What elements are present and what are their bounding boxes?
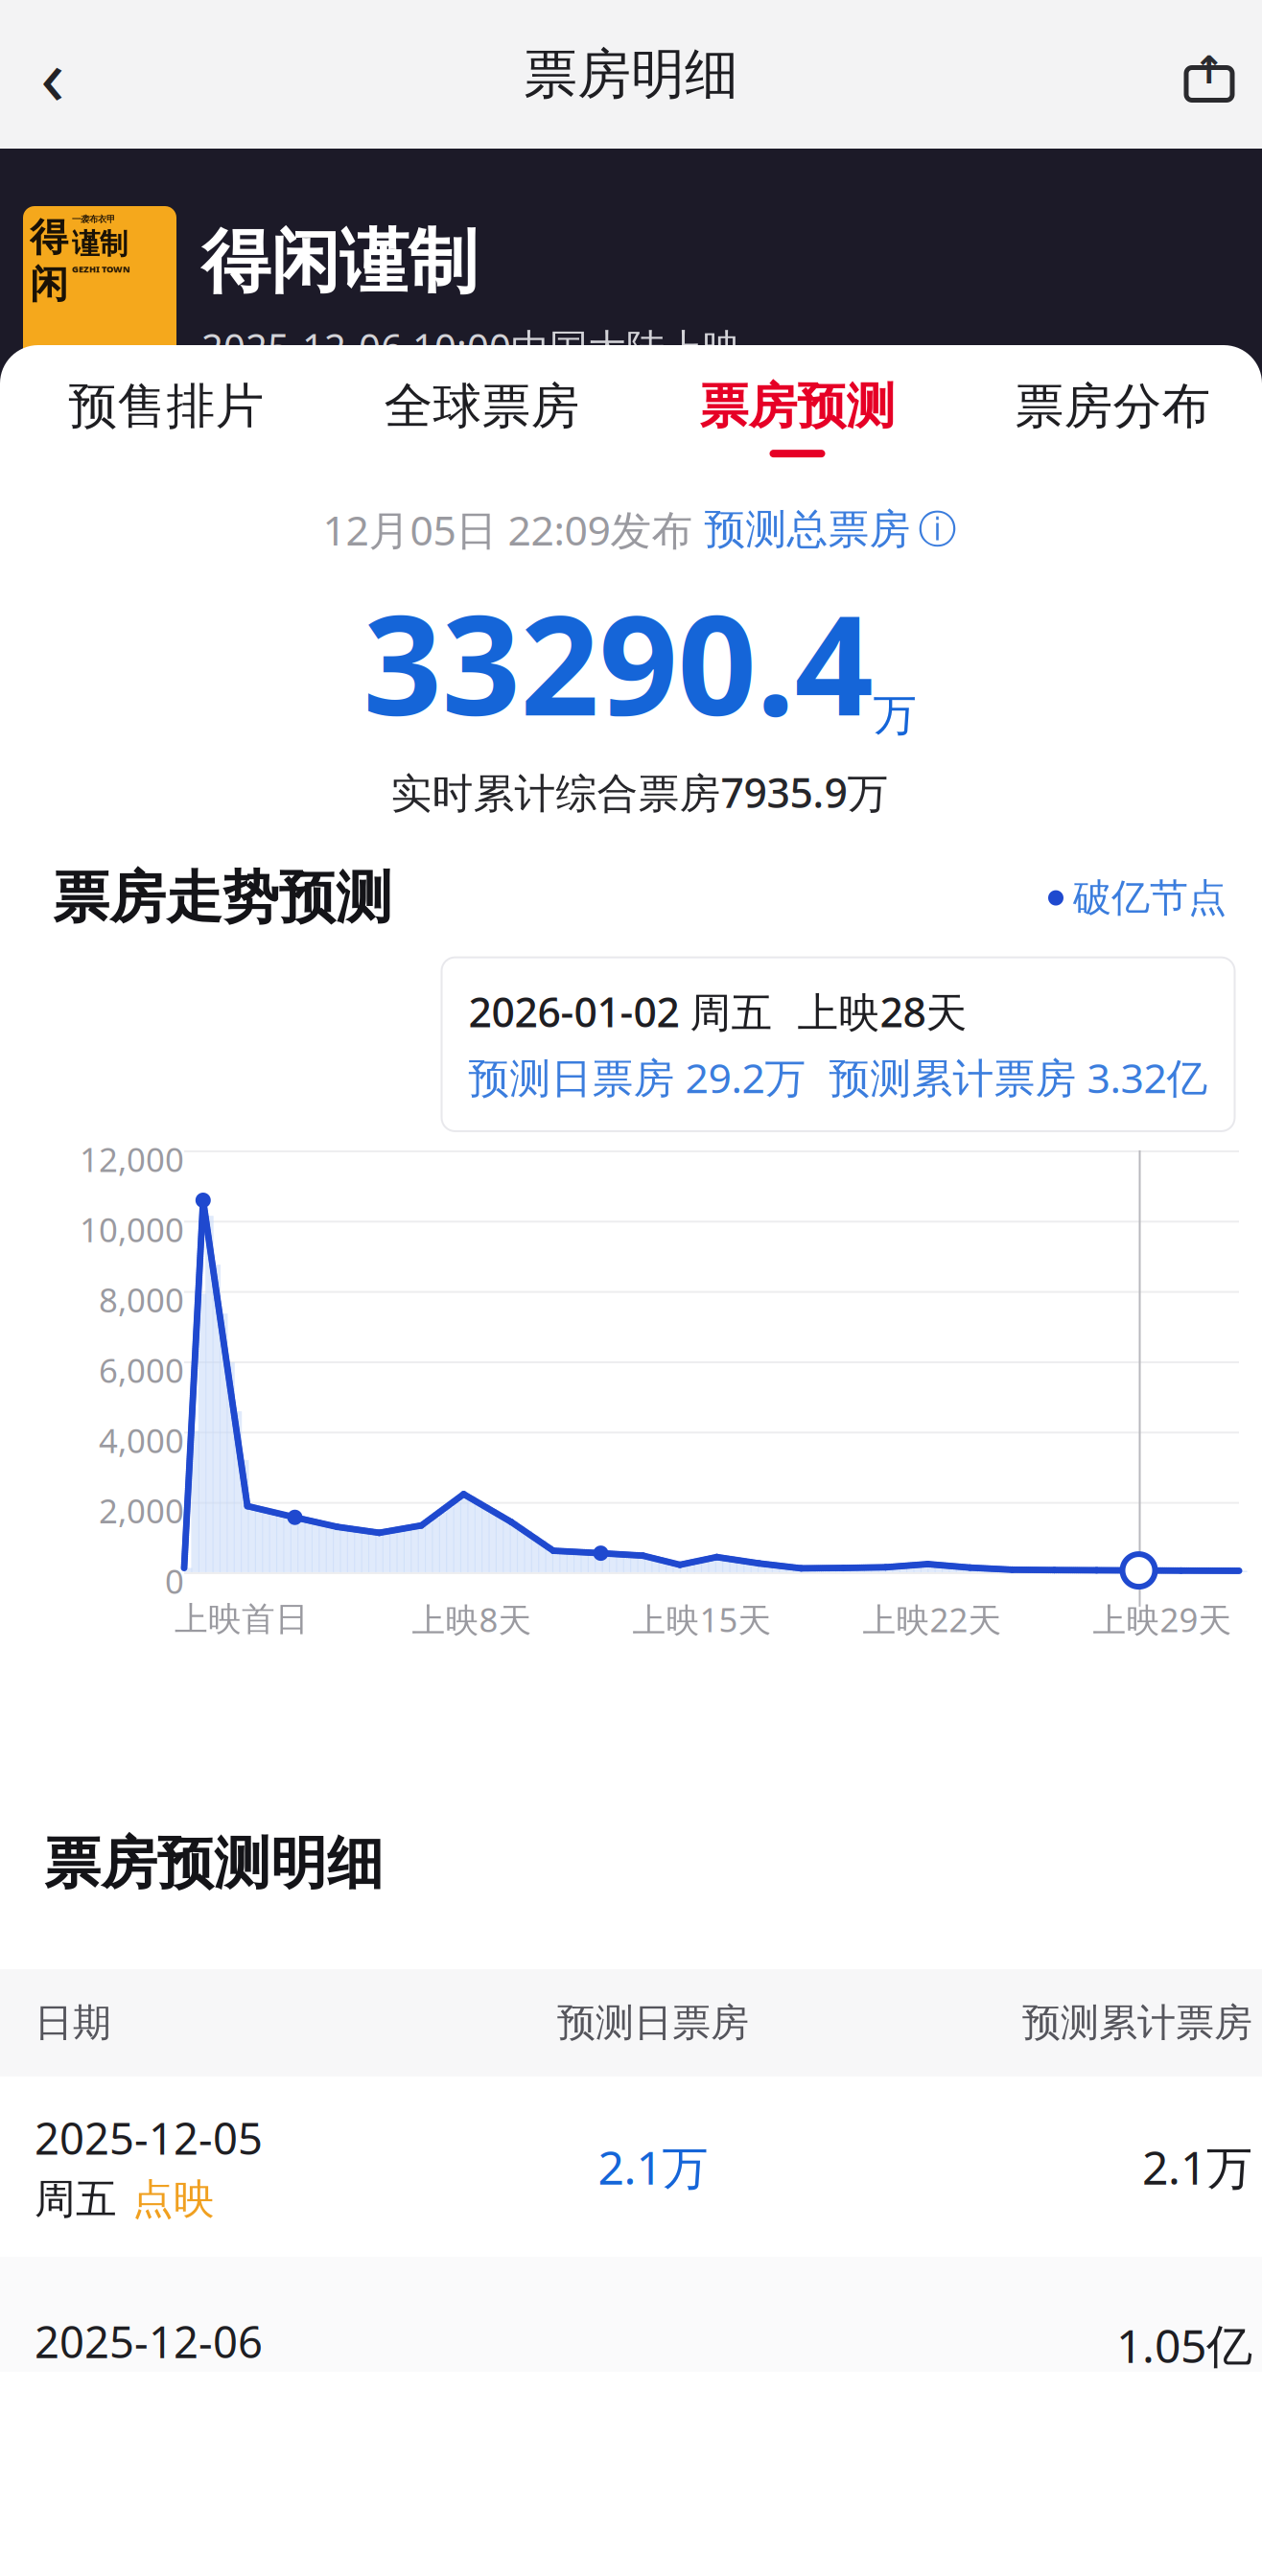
staticText: ↑: [1193, 48, 1226, 92]
staticText: 全球票房: [384, 377, 580, 436]
staticText: 预测日票房: [557, 1999, 749, 2046]
staticText: 票房预测: [700, 377, 895, 436]
button[interactable]: 票房预测: [640, 345, 955, 489]
staticText: 2026-01-02 周五: [468, 984, 772, 1039]
staticText: 2025-12-06: [35, 2312, 263, 2370]
staticText: 2.1万: [598, 2136, 708, 2197]
staticText: 预测累计票房 3.32亿: [829, 1050, 1208, 1104]
button[interactable]: 全球票房: [324, 345, 640, 489]
staticText: 33290.4: [363, 570, 873, 753]
staticText: 0: [165, 1559, 184, 1603]
staticText: 上映22天: [863, 1597, 1002, 1641]
button[interactable]: 2025-12-05: [0, 2077, 1262, 2257]
staticText: 全国上映: [108, 392, 170, 411]
button[interactable]: 预售排片: [9, 345, 324, 489]
staticText: 预测累计票房: [1022, 1999, 1252, 2046]
staticText: 4,000: [99, 1418, 184, 1462]
staticText: 8,000: [99, 1278, 184, 1322]
staticText: 周五: [35, 2174, 117, 2224]
button[interactable]: 票房分布: [955, 345, 1262, 489]
staticText: 上映28天: [797, 984, 967, 1039]
staticText: GEZHI TOWN: [72, 263, 130, 275]
staticText: 谨制: [72, 227, 128, 261]
staticText: 预售排片: [69, 377, 264, 436]
staticText: 票房预测明细: [44, 1829, 384, 1898]
staticText: 2.1万: [1142, 2136, 1252, 2197]
staticText: 2,000: [99, 1488, 184, 1533]
staticText: 12月6日: [108, 370, 170, 392]
staticText: 票房明细: [524, 41, 738, 107]
staticText: 点映: [132, 2174, 215, 2224]
staticText: 10,000: [80, 1207, 184, 1251]
staticText: 2025-12-05: [35, 2109, 263, 2167]
staticText: 上映29天: [1093, 1597, 1232, 1641]
staticText: 6,000: [99, 1348, 184, 1392]
staticText: 上映15天: [632, 1597, 771, 1641]
staticText: 累计票房7935.3万: [201, 380, 514, 431]
staticText: 一袭布衣甲: [72, 214, 115, 225]
staticText: 上映首日: [175, 1599, 309, 1640]
staticText: 2025-12-06 10:00中国大陆上映: [201, 322, 741, 372]
staticText: 12月05日 22:09发布: [323, 502, 693, 557]
staticText: 得闲: [30, 214, 68, 308]
staticText: 预测总票房: [704, 504, 911, 555]
staticText: 预测日票房 29.2万: [468, 1050, 806, 1104]
staticText: 破亿节点: [1073, 874, 1227, 921]
staticText: 得闲谨制: [201, 220, 478, 304]
button[interactable]: Back: [0, 22, 105, 127]
staticText: 票房分布: [1015, 377, 1211, 436]
button[interactable]: Share: [1157, 22, 1262, 127]
staticText: 票房走势预测: [53, 863, 392, 932]
staticText: ‹: [40, 22, 65, 127]
staticText: ⓘ: [918, 506, 957, 553]
staticText: 12,000: [80, 1137, 184, 1181]
staticText: 日期: [35, 1999, 111, 2046]
staticText: 上映8天: [412, 1597, 532, 1641]
staticText: 万: [873, 689, 916, 742]
button[interactable]: 2025-12-06: [0, 2257, 1262, 2372]
button[interactable]: 预测总票房: [704, 504, 957, 555]
staticText: 实时累计综合票房7935.9万: [391, 765, 888, 819]
staticText: 1.05亿: [1116, 2315, 1252, 2376]
